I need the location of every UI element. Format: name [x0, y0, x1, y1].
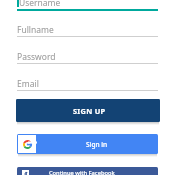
button[interactable]: Fullname [17, 24, 158, 35]
button[interactable]: Username [17, 0, 158, 8]
button[interactable]: SIGN UP [16, 99, 160, 122]
staticText: Continue with Facebook [49, 169, 115, 175]
button[interactable]: Email [17, 78, 158, 89]
staticText: Password [17, 51, 56, 62]
other: Sign in with Google [23, 140, 32, 149]
button[interactable]: Continue with Facebook [17, 167, 158, 175]
staticText: Sign in [86, 140, 108, 149]
button[interactable]: Password [17, 51, 158, 62]
button[interactable]: Sign in with Google [17, 134, 158, 154]
staticText: Username [19, 0, 61, 8]
other: Continue with Facebook [22, 170, 29, 175]
staticText: Email [17, 78, 39, 89]
staticText: Fullname [17, 24, 54, 35]
staticText: SIGN UP [73, 106, 106, 116]
